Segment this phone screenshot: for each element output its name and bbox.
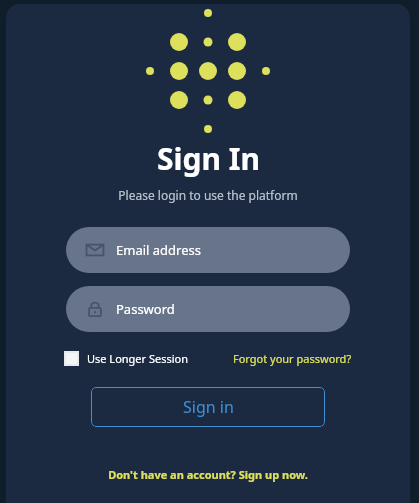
button[interactable]: Password [66, 286, 350, 332]
button[interactable]: Forgot your password? [233, 349, 352, 368]
staticText: Password [116, 300, 175, 318]
staticText: Forgot your password? [233, 351, 352, 366]
button[interactable]: Sign in [91, 387, 325, 427]
button[interactable]: Don't have an account? Sign up now. [102, 464, 314, 485]
staticText: Don't have an account? Sign up now. [108, 467, 308, 482]
staticText: Use Longer Session [87, 351, 189, 366]
staticText: Please login to use the platform [118, 187, 298, 203]
staticText: Email address [116, 241, 201, 259]
staticText: Sign In [157, 138, 260, 179]
button[interactable]: Email address [66, 227, 350, 273]
staticText: Sign in [183, 396, 234, 418]
button[interactable]: Use Longer Session [64, 349, 189, 368]
